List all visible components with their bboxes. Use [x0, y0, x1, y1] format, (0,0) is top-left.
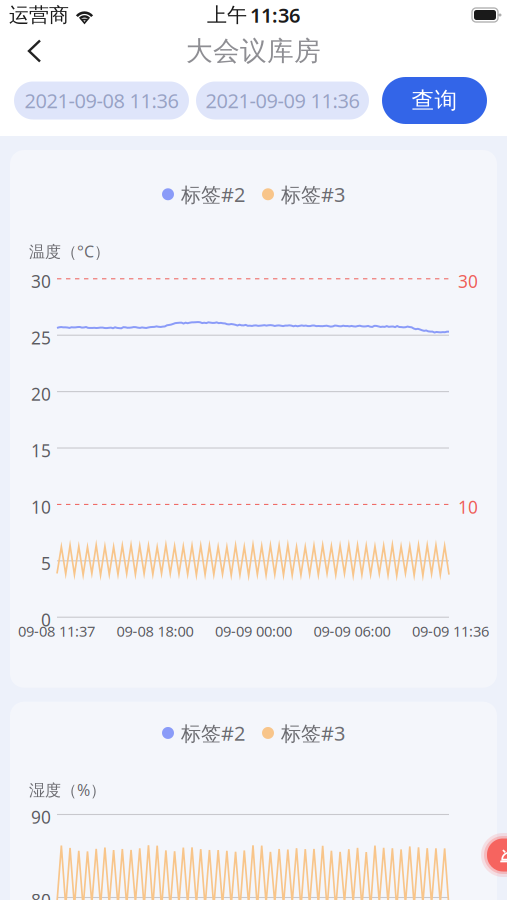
staticText: 09-08 18:00 — [116, 621, 193, 641]
staticText: 20 — [31, 383, 51, 406]
staticText: 标签#3 — [281, 720, 345, 746]
staticText: 09-09 06:00 — [313, 621, 390, 641]
staticText: 0 — [41, 608, 51, 631]
staticText: 大会议库房 — [186, 35, 321, 67]
staticText: 标签#2 — [181, 720, 245, 746]
staticText: 30 — [31, 270, 51, 293]
button[interactable]: 2021-09-09 11:36 — [196, 81, 369, 119]
button[interactable]: 2021-09-08 11:36 — [14, 81, 189, 119]
staticText: 10 — [458, 495, 478, 518]
staticText: 2021-09-09 11:36 — [205, 87, 359, 114]
staticText: 湿度（%） — [29, 779, 106, 800]
staticText: 15 — [31, 439, 51, 462]
staticText: 标签#2 — [181, 181, 245, 208]
button[interactable]: Alarms — [481, 833, 507, 877]
staticText: 查询 — [411, 87, 457, 114]
staticText: 90 — [31, 805, 51, 828]
staticText: 运营商 — [9, 3, 69, 27]
staticText: 09-08 11:37 — [18, 621, 95, 641]
staticText: 5 — [41, 552, 51, 575]
staticText: 09-09 00:00 — [215, 621, 292, 641]
staticText: 标签#3 — [281, 181, 345, 208]
staticText: 2021-09-08 11:36 — [24, 87, 178, 114]
staticText: 温度（°C） — [29, 241, 110, 262]
staticText: 11:36 — [250, 2, 300, 28]
staticText: 80 — [31, 888, 51, 900]
staticText: 10 — [31, 495, 51, 518]
button[interactable]: 查询 — [382, 77, 487, 124]
staticText: 25 — [31, 326, 51, 349]
staticText: 09-09 11:36 — [412, 621, 489, 641]
button[interactable]: Back — [0, 29, 56, 72]
staticText: 30 — [458, 270, 478, 293]
staticText: 上午 — [207, 3, 247, 27]
